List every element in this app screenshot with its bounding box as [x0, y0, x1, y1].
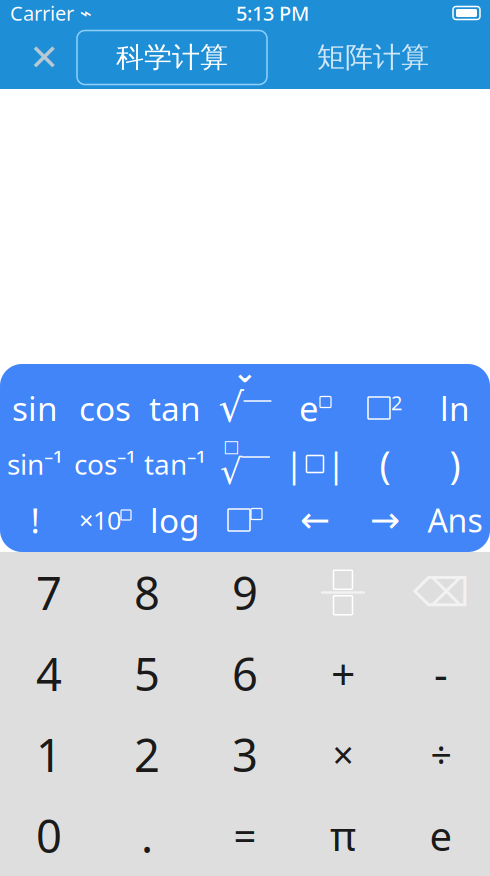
staticText: e — [299, 385, 319, 431]
staticText: ⌫ — [412, 570, 469, 615]
staticText: tan⁻¹ — [144, 445, 206, 483]
staticText: | — [326, 441, 345, 487]
button[interactable]: - — [392, 633, 490, 714]
staticText: □ — [223, 436, 239, 456]
staticText: 3 — [232, 724, 258, 785]
button[interactable]: ln — [420, 380, 490, 436]
button[interactable]: Collapse functions — [215, 364, 275, 380]
staticText: 6 — [232, 643, 258, 704]
button[interactable]: Ans — [420, 492, 490, 548]
staticText: e — [429, 809, 452, 862]
staticText: cos⁻¹ — [74, 445, 136, 483]
button[interactable]: √ — [210, 380, 280, 436]
staticText: 4 — [36, 643, 62, 704]
button[interactable]: 9 — [196, 552, 294, 633]
staticText: √ — [218, 385, 243, 431]
staticText: √ — [220, 452, 242, 491]
staticText: Ans — [427, 499, 482, 541]
button[interactable]: 0 — [0, 795, 98, 876]
staticText: 0 — [36, 805, 62, 866]
button[interactable]: Move cursor right — [350, 492, 420, 548]
button[interactable]: ! — [0, 492, 70, 548]
button[interactable]: 8 — [98, 552, 196, 633]
button[interactable]: cos⁻¹ — [70, 436, 140, 492]
button[interactable] — [210, 492, 280, 548]
button[interactable]: π — [294, 795, 392, 876]
staticText: ln — [440, 386, 470, 430]
staticText: ⌁ — [80, 2, 92, 24]
staticText: 2 — [134, 724, 160, 785]
button[interactable]: 7 — [0, 552, 98, 633]
button[interactable]: 科学计算 — [77, 30, 267, 84]
staticText: cos — [79, 386, 131, 430]
button[interactable]: + — [294, 633, 392, 714]
staticText: ) — [449, 439, 460, 489]
button[interactable]: × — [294, 714, 392, 795]
button[interactable]: ( — [350, 436, 420, 492]
button[interactable]: log — [140, 492, 210, 548]
staticText: sin — [12, 386, 58, 430]
button[interactable]: tan⁻¹ — [140, 436, 210, 492]
button[interactable]: Close — [11, 28, 77, 86]
button[interactable]: 2 — [98, 714, 196, 795]
staticText: . — [141, 805, 153, 866]
button[interactable]: = — [196, 795, 294, 876]
staticText: ! — [30, 497, 39, 543]
button[interactable]: 1 — [0, 714, 98, 795]
staticText: × — [332, 730, 353, 779]
staticText: 2 — [391, 389, 402, 416]
button[interactable]: sin⁻¹ — [0, 436, 70, 492]
button[interactable]: Delete — [392, 552, 490, 633]
staticText: | — [284, 441, 303, 487]
button[interactable]: ÷ — [392, 714, 490, 795]
button[interactable]: . — [98, 795, 196, 876]
button[interactable]: | — [280, 436, 350, 492]
button[interactable]: 3 — [196, 714, 294, 795]
staticText: 7 — [36, 562, 62, 623]
staticText: Carrier — [10, 0, 74, 26]
button[interactable]: □ — [210, 436, 280, 492]
staticText: - — [434, 645, 448, 702]
staticText: ÷ — [430, 730, 451, 779]
staticText: ✕ — [29, 37, 59, 78]
staticText: 5:13 PM — [236, 0, 309, 26]
staticText: 1 — [36, 724, 62, 785]
staticText: ⌄ — [232, 355, 257, 389]
button[interactable]: e — [280, 380, 350, 436]
staticText: 9 — [232, 562, 258, 623]
button[interactable]: tan — [140, 380, 210, 436]
button[interactable]: 6 — [196, 633, 294, 714]
button[interactable]: Move cursor left — [280, 492, 350, 548]
button[interactable]: 5 — [98, 633, 196, 714]
staticText: 矩阵计算 — [317, 40, 429, 75]
staticText: 8 — [134, 562, 160, 623]
button[interactable]: cos — [70, 380, 140, 436]
staticText: 5 — [134, 643, 160, 704]
button[interactable]: sin — [0, 380, 70, 436]
staticText: = — [233, 809, 256, 862]
button[interactable]: 4 — [0, 633, 98, 714]
staticText: log — [150, 498, 200, 542]
staticText: 科学计算 — [116, 40, 228, 75]
staticText: + — [331, 645, 355, 702]
staticText: sin⁻¹ — [7, 445, 63, 483]
staticText: tan — [149, 386, 201, 430]
button[interactable]: 2 — [350, 380, 420, 436]
button[interactable]: ×10 — [70, 492, 140, 548]
button[interactable]: 矩阵计算 — [267, 30, 479, 84]
button[interactable]: Fraction — [294, 552, 392, 633]
staticText: ( — [379, 439, 390, 489]
staticText: → — [370, 500, 400, 540]
button[interactable]: e — [392, 795, 490, 876]
staticText: ← — [300, 500, 330, 540]
button[interactable]: ) — [420, 436, 490, 492]
staticText: π — [330, 809, 356, 862]
staticText: ×10 — [79, 503, 121, 537]
